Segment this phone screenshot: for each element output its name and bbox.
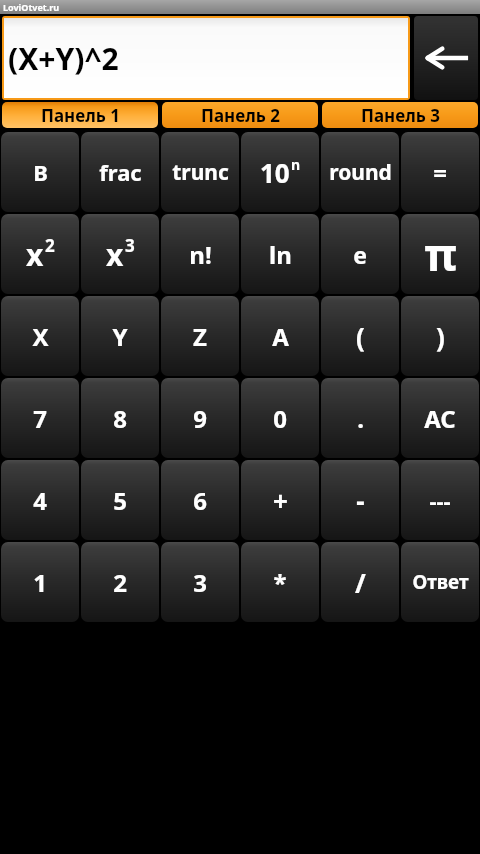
staticText: Панель 2 [201,104,280,127]
staticText: 3 [193,566,207,599]
button[interactable]: Панель 1 [2,102,158,128]
staticText: Панель 3 [361,104,440,127]
button[interactable]: 6 [161,460,239,540]
button[interactable]: ln [241,214,319,294]
staticText: x [26,234,44,275]
staticText: n! [189,238,212,271]
button[interactable]: / [321,542,399,622]
button[interactable]: trunc [161,132,239,212]
button[interactable]: 5 [81,460,159,540]
button[interactable]: 1 [1,542,79,622]
button[interactable]: Панель 3 [322,102,478,128]
staticText: trunc [172,158,229,187]
button[interactable]: 7 [1,378,79,458]
button[interactable]: Ответ [401,542,479,622]
staticText: 7 [33,402,47,435]
staticText: LoviOtvet.ru [3,1,60,13]
staticText: B [33,157,48,187]
button[interactable]: 0 [241,378,319,458]
button[interactable]: x [1,214,79,294]
staticText: 9 [193,402,207,435]
staticText: Z [193,320,207,353]
staticText: 0 [273,402,287,435]
button[interactable]: A [241,296,319,376]
staticText: 3 [125,234,135,257]
button[interactable]: Z [161,296,239,376]
button[interactable]: AC [401,378,479,458]
staticText: π [424,224,457,284]
staticText: n [291,155,301,174]
staticText: round [329,158,392,187]
button[interactable]: 4 [1,460,79,540]
staticText: ln [269,238,292,271]
staticText: 2 [113,566,127,599]
staticText: - [356,483,365,518]
button[interactable]: (X+Y)^2 [4,18,408,98]
staticText: = [433,156,447,189]
staticText: AC [424,402,456,435]
button[interactable]: ( [321,296,399,376]
staticText: + [273,483,288,518]
button[interactable]: --- [401,460,479,540]
staticText: 8 [113,402,127,435]
staticText: 1 [33,566,47,599]
button[interactable]: * [241,542,319,622]
button[interactable]: e [321,214,399,294]
staticText: ( [356,319,365,354]
button[interactable]: frac [81,132,159,212]
staticText: 2 [45,234,55,257]
button[interactable]: . [321,378,399,458]
staticText: X [32,320,49,353]
staticText: 10 [260,155,290,190]
button[interactable]: Панель 2 [162,102,318,128]
button[interactable]: 10 [241,132,319,212]
button[interactable]: X [1,296,79,376]
button[interactable]: 8 [81,378,159,458]
button[interactable]: round [321,132,399,212]
button[interactable]: Backspace [414,16,478,100]
staticText: Ответ [412,569,469,595]
staticText: --- [429,485,451,515]
button[interactable]: 2 [81,542,159,622]
button[interactable]: π [401,214,479,294]
button[interactable]: 3 [161,542,239,622]
button[interactable]: 9 [161,378,239,458]
staticText: x [106,234,124,275]
staticText: e [353,239,367,270]
staticText: A [272,320,289,353]
staticText: Панель 1 [41,104,120,127]
staticText: ) [436,319,445,354]
button[interactable]: B [1,132,79,212]
staticText: 5 [113,484,127,517]
staticText: . [357,402,364,435]
staticText: * [273,566,287,599]
staticText: Y [112,320,128,353]
staticText: 4 [33,484,47,517]
button[interactable]: x [81,214,159,294]
button[interactable]: n! [161,214,239,294]
staticText: frac [99,157,142,187]
button[interactable]: - [321,460,399,540]
button[interactable]: + [241,460,319,540]
staticText: / [355,565,366,600]
button[interactable]: Y [81,296,159,376]
staticText: (X+Y)^2 [8,38,119,79]
button[interactable]: = [401,132,479,212]
button[interactable]: ) [401,296,479,376]
staticText: 6 [193,484,207,517]
